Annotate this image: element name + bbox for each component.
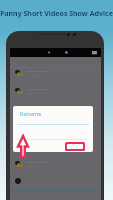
other: Pointer arrow (18, 136, 28, 157)
button[interactable]: Audio file (15, 178, 21, 184)
button[interactable] (10, 160, 101, 178)
button[interactable]: Highlighted OK button (65, 142, 85, 151)
staticText: Funny Short Videos Show Advice (0, 9, 113, 19)
button[interactable] (10, 123, 101, 141)
button[interactable] (10, 105, 101, 123)
staticText: Rename (20, 110, 42, 117)
button[interactable]: Rename (13, 106, 93, 152)
button[interactable] (10, 141, 101, 159)
button[interactable] (10, 69, 101, 87)
button[interactable] (10, 87, 101, 105)
